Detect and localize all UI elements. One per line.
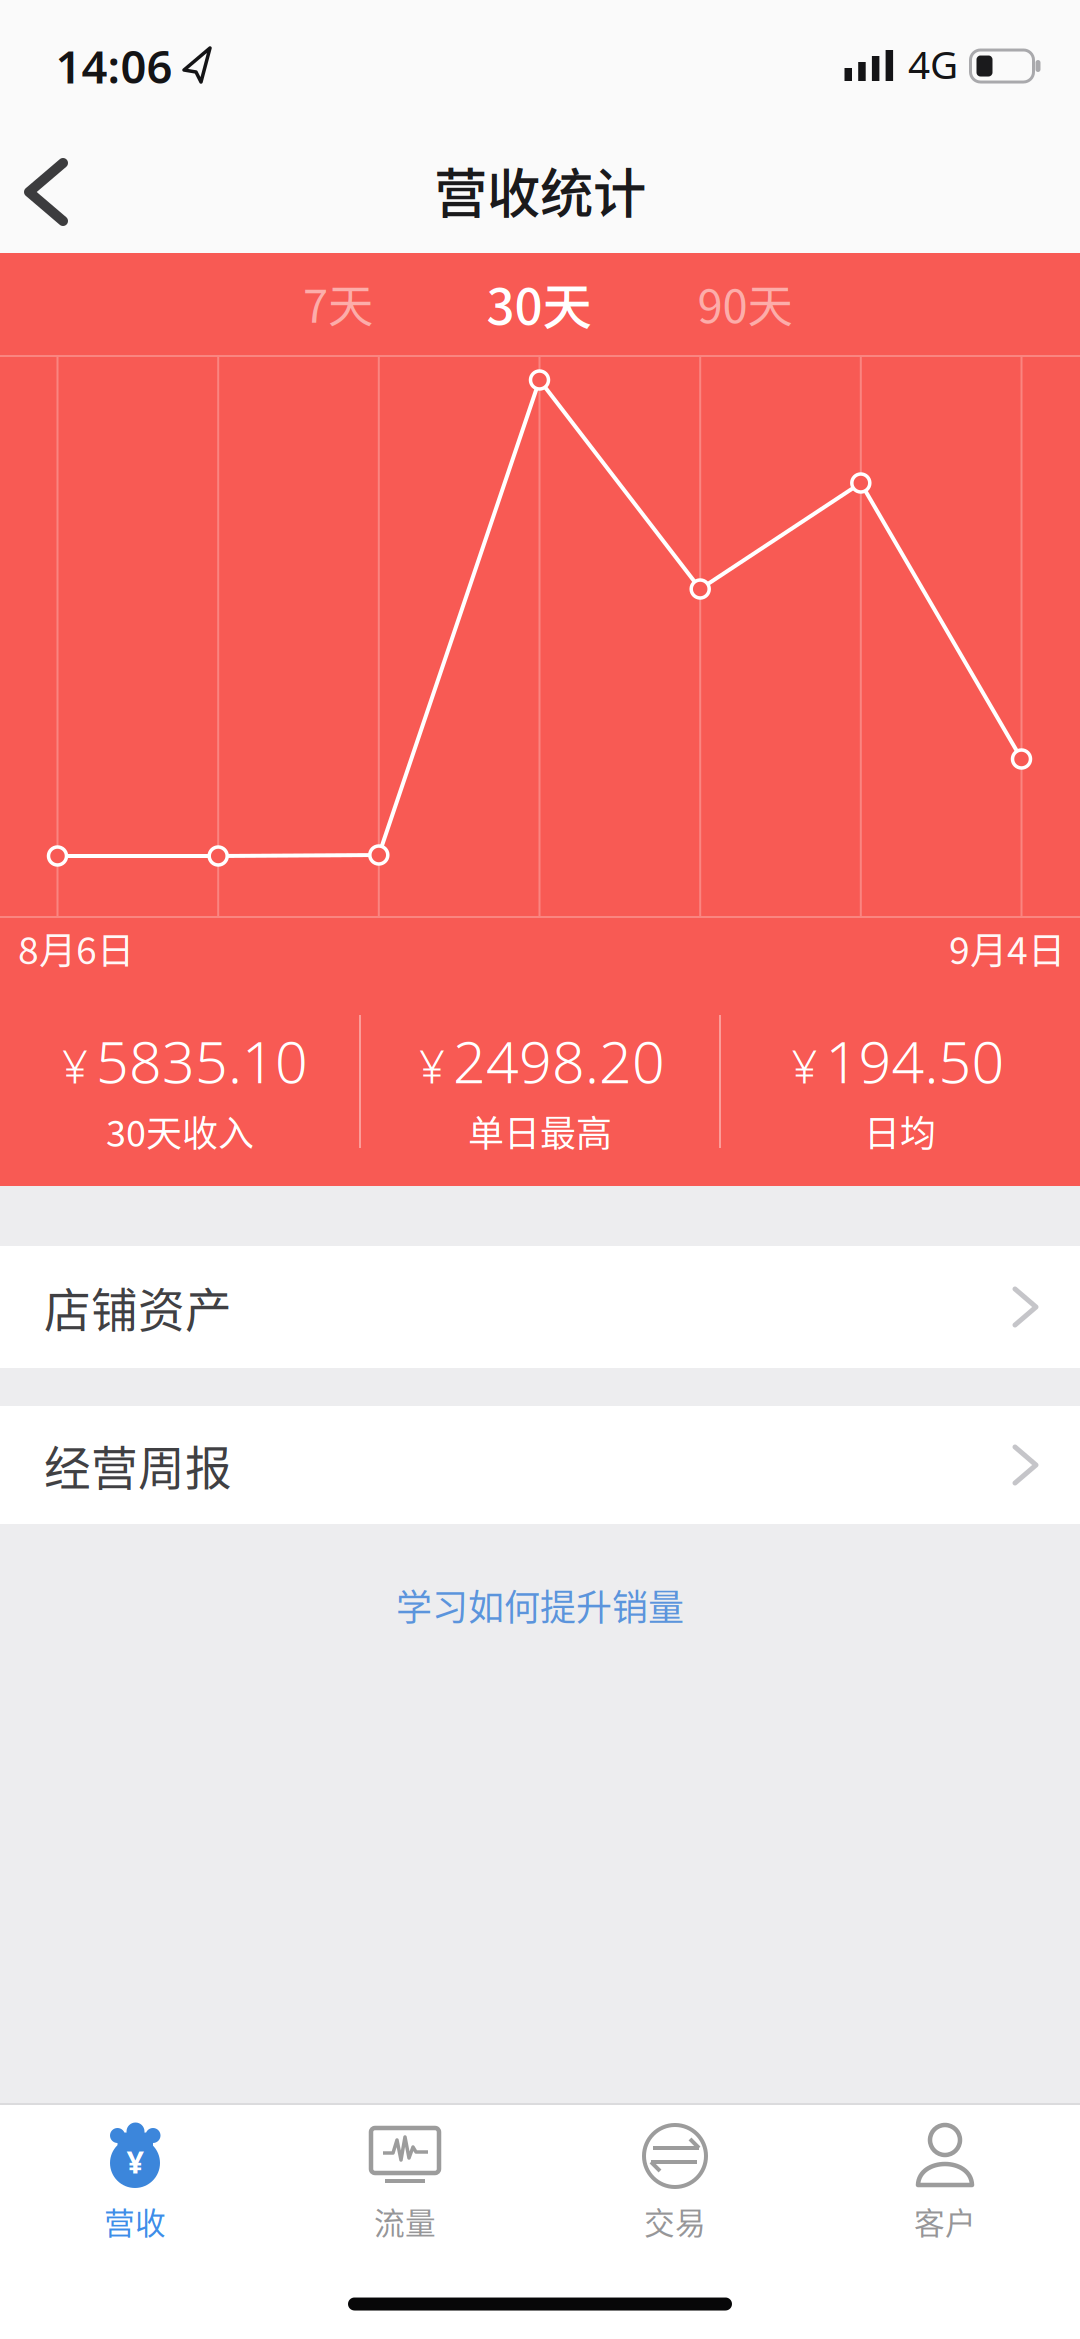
staticText: 5835.10 [96,1023,308,1099]
staticText: 日均 [864,1105,936,1157]
staticText: 8月6日 [18,921,134,975]
button[interactable]: 90天 [697,270,792,336]
button[interactable]: 学习如何提升销量 [396,1579,684,1631]
staticText: 交易 [644,2199,706,2243]
button[interactable]: ¥ [0,2121,270,2243]
staticText: 90天 [697,270,792,336]
staticText: 7天 [303,270,373,336]
staticText: ¥ [419,1036,445,1096]
button[interactable]: 7天 [303,270,373,336]
staticText: ¥ [126,2141,144,2182]
staticText: ¥ [62,1036,88,1096]
staticText: 营收 [104,2199,166,2243]
staticText: 9月4日 [949,921,1065,975]
staticText: 营收统计 [434,151,646,229]
button[interactable]: 交易 [540,2121,810,2243]
staticText: 14:06 [55,36,172,96]
staticText: 30天 [486,267,591,339]
button[interactable]: Back [23,159,69,225]
staticText: 店铺资产 [44,1273,232,1341]
staticText: 经营周报 [44,1431,232,1499]
staticText: 单日最高 [468,1105,612,1157]
button[interactable]: 经营周报 [0,1406,1080,1524]
staticText: 4G [908,38,958,90]
staticText: 流量 [374,2199,436,2243]
button[interactable]: 店铺资产 [0,1246,1080,1368]
button[interactable]: 流量 [270,2121,540,2243]
button[interactable]: 客户 [810,2121,1080,2243]
staticText: 2498.20 [453,1023,665,1099]
staticText: 学习如何提升销量 [396,1579,684,1631]
staticText: 194.50 [825,1023,1004,1099]
button[interactable]: 30天 [486,267,591,339]
staticText: 客户 [914,2199,976,2243]
staticText: ¥ [791,1036,817,1096]
staticText: 30天收入 [106,1105,254,1157]
